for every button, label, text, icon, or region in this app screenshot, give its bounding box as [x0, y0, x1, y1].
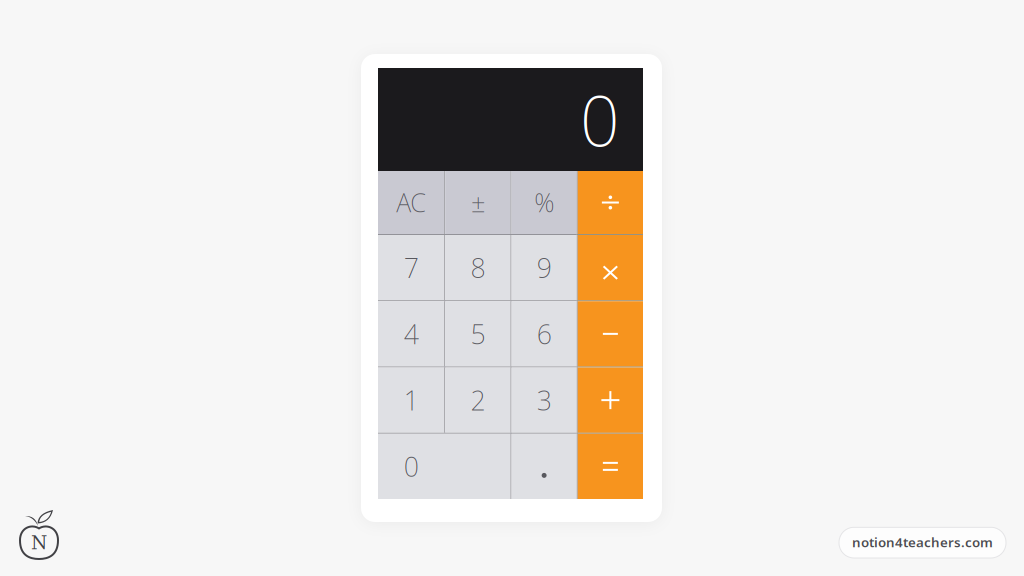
button[interactable]: 2 [445, 367, 510, 433]
staticText: AC [396, 186, 426, 219]
button[interactable]: 3 [511, 367, 577, 433]
staticText: 6 [537, 316, 552, 352]
button[interactable]: Subtract [578, 301, 643, 366]
button[interactable]: Add [578, 367, 643, 433]
button[interactable]: Equals [578, 434, 643, 499]
button[interactable]: 0 [378, 434, 510, 499]
button[interactable]: 5 [445, 301, 510, 366]
button[interactable]: 8 [445, 235, 510, 300]
button[interactable]: AC [378, 171, 444, 234]
button[interactable]: 7 [378, 235, 444, 300]
button[interactable]: Multiply [578, 235, 643, 300]
button[interactable]: % [511, 171, 577, 234]
button[interactable]: ± [445, 171, 510, 234]
staticText: 5 [470, 316, 485, 352]
staticText: 0 [580, 73, 620, 166]
staticText: N [31, 532, 47, 554]
staticText: 4 [404, 316, 419, 352]
staticText: 0 [404, 449, 419, 484]
staticText: notion4teachers.com [852, 533, 993, 551]
staticText: 8 [470, 250, 485, 285]
button[interactable]: 9 [511, 235, 577, 300]
button[interactable]: notion4teachers.com [839, 527, 1006, 558]
button[interactable]: 1 [378, 367, 444, 433]
button[interactable]: Decimal point [511, 434, 577, 499]
staticText: % [534, 186, 554, 219]
button[interactable]: 4 [378, 301, 444, 366]
staticText: 2 [470, 382, 485, 418]
staticText: ± [471, 186, 485, 219]
staticText: 1 [404, 382, 419, 418]
button[interactable]: 6 [511, 301, 577, 366]
staticText: 9 [537, 250, 552, 285]
staticText: 3 [537, 382, 552, 418]
staticText: 7 [404, 250, 419, 285]
button[interactable]: Divide [578, 171, 643, 234]
